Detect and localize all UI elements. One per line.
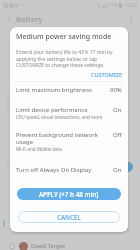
- button[interactable]: More options: [125, 13, 137, 25]
- staticText: Dead Target: [31, 242, 66, 250]
- staticText: On: [113, 166, 122, 174]
- staticText: Wi-Fi and Mobile data: [16, 146, 62, 152]
- button[interactable]: CUSTOMIZE: [89, 70, 125, 79]
- staticText: 77%: [108, 2, 118, 9]
- staticText: On: [113, 106, 122, 114]
- staticText: 90%: [110, 86, 122, 94]
- staticText: 14:32: [124, 2, 137, 9]
- staticText: Limit device performance: [16, 106, 88, 114]
- staticText: Off: [113, 131, 122, 139]
- staticText: CANCEL: [57, 213, 81, 222]
- button[interactable]: CANCEL: [18, 211, 120, 223]
- staticText: Tap: [6, 165, 14, 171]
- staticText: Sys: [6, 101, 13, 107]
- staticText: Pre: [6, 94, 16, 102]
- staticText: CUSTOMIZE: [91, 71, 123, 78]
- staticText: Limit maximum brightness: [16, 86, 92, 94]
- button[interactable]: Prevent background network usage: [10, 131, 128, 152]
- button[interactable]: Turn off Always On Display: [10, 166, 128, 174]
- button[interactable]: Optimise: [123, 162, 133, 172]
- button[interactable]: Limit device performance: [10, 106, 128, 120]
- staticText: CPU speed, visual interactions, and more: [16, 114, 103, 120]
- staticText: APPLY (+7 h 48 min): [39, 190, 99, 199]
- staticText: Turn off Always On Display: [16, 166, 92, 174]
- button[interactable]: Back: [3, 13, 15, 25]
- staticText: Battery: [16, 14, 43, 24]
- button[interactable]: APPLY (+7 h 48 min): [17, 188, 121, 200]
- button[interactable]: Limit maximum brightness: [10, 86, 128, 94]
- staticText: App: [6, 157, 18, 165]
- staticText: Prevent background network usage: [16, 131, 109, 146]
- staticText: Extend your battery life to 43 h 17 min …: [16, 49, 122, 68]
- staticText: 12: [6, 107, 12, 113]
- staticText: Medium power saving mode: [16, 32, 112, 42]
